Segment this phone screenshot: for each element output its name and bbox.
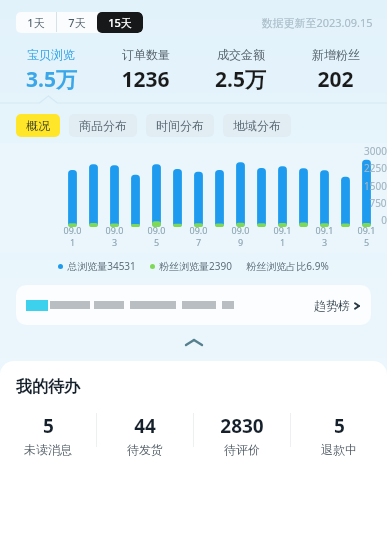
staticText: 地域分布: [233, 118, 281, 133]
button[interactable]: 2830: [194, 413, 290, 457]
button[interactable]: 7天: [57, 12, 97, 33]
staticText: 09.01: [62, 224, 83, 248]
staticText: 1天: [27, 15, 45, 30]
staticText: 15天: [108, 15, 132, 30]
staticText: 09.13: [314, 224, 335, 248]
staticText: 粉丝浏览量2390: [159, 259, 232, 273]
staticText: 成交金额: [217, 47, 265, 62]
button[interactable]: 5: [291, 413, 387, 457]
staticText: 时间分布: [156, 118, 204, 133]
staticText: 订单数量: [122, 47, 170, 62]
staticText: 2830: [220, 413, 264, 439]
button[interactable]: 地域分布: [223, 114, 291, 137]
staticText: 粉丝浏览占比6.9%: [246, 259, 329, 273]
button[interactable]: 趋势榜: [16, 285, 371, 325]
button[interactable]: 44: [97, 413, 193, 457]
staticText: 5: [43, 413, 54, 439]
staticText: 2250: [364, 161, 387, 175]
staticText: 数据更新至2023.09.15: [261, 15, 373, 30]
staticText: 09.11: [272, 224, 293, 248]
staticText: 1236: [121, 65, 170, 94]
staticText: 3000: [364, 144, 387, 158]
staticText: 3.5万: [26, 65, 77, 94]
button[interactable]: 成交金额: [193, 47, 288, 94]
button[interactable]: 1天: [16, 12, 56, 33]
staticText: 未读消息: [24, 442, 72, 457]
staticText: 09.05: [146, 224, 167, 248]
staticText: 我的待办: [16, 377, 80, 397]
staticText: 7天: [68, 15, 86, 30]
staticText: 2.5万: [215, 65, 266, 94]
button[interactable]: 15天: [97, 12, 143, 33]
staticText: 总浏览量34531: [67, 259, 136, 273]
staticText: 趋势榜: [314, 298, 350, 313]
button[interactable]: 概况: [16, 114, 60, 137]
staticText: 750: [369, 196, 387, 210]
staticText: 新增粉丝: [312, 47, 360, 62]
button[interactable]: 新增粉丝: [288, 47, 383, 94]
button[interactable]: 宝贝浏览: [4, 47, 98, 94]
staticText: 09.09: [230, 224, 251, 248]
staticText: 退款中: [321, 442, 357, 457]
staticText: 09.07: [188, 224, 209, 248]
staticText: 5: [334, 413, 345, 439]
staticText: 待评价: [224, 442, 260, 457]
staticText: 商品分布: [79, 118, 127, 133]
staticText: 概况: [26, 118, 50, 133]
button[interactable]: 商品分布: [69, 114, 137, 137]
button[interactable]: 5: [0, 413, 96, 457]
staticText: 44: [134, 413, 156, 439]
staticText: 待发货: [127, 442, 163, 457]
staticText: 0: [381, 213, 387, 227]
staticText: 1500: [364, 179, 387, 193]
button[interactable]: 时间分布: [146, 114, 214, 137]
staticText: 09.15: [356, 224, 377, 248]
button[interactable]: 订单数量: [98, 47, 193, 94]
button[interactable]: Collapse: [0, 331, 387, 353]
staticText: 宝贝浏览: [27, 47, 75, 62]
staticText: 09.03: [104, 224, 125, 248]
staticText: 202: [317, 65, 354, 94]
